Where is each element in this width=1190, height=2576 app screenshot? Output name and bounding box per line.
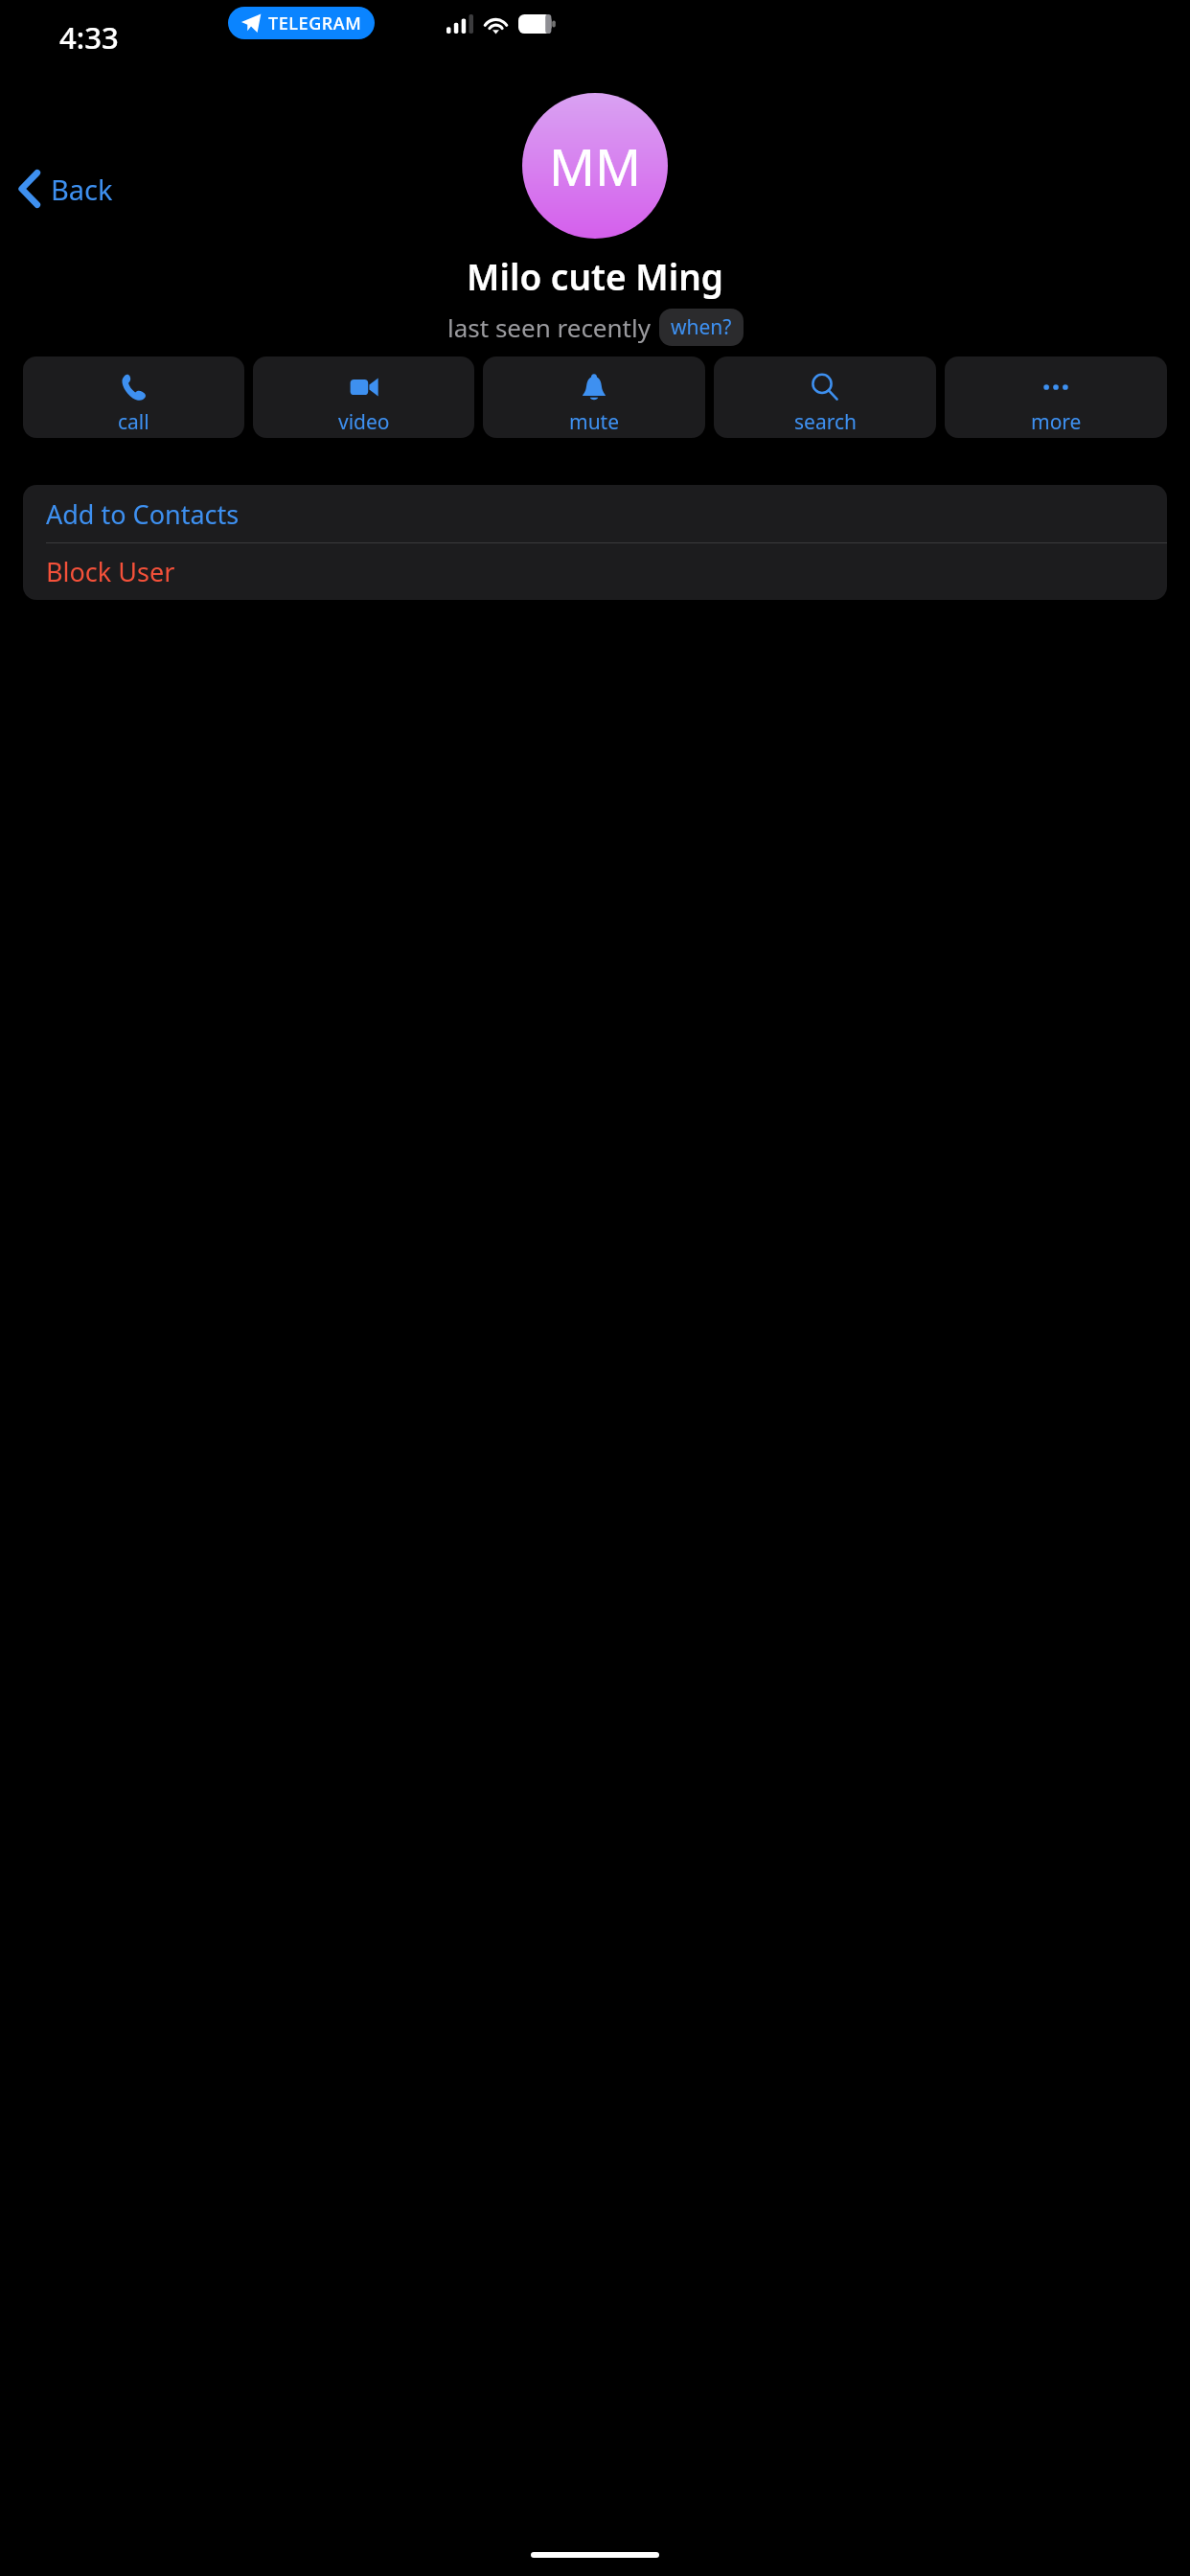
button[interactable]: video <box>253 356 474 438</box>
staticText: TELEGRAM <box>268 11 362 35</box>
staticText: when? <box>671 313 732 341</box>
staticText: Back <box>51 171 113 208</box>
button[interactable]: when? <box>659 309 744 346</box>
staticText: mute <box>569 408 620 436</box>
button[interactable]: Block User <box>23 543 1167 600</box>
staticText: MM <box>549 131 642 200</box>
button[interactable]: Back <box>13 161 117 217</box>
staticText: Add to Contacts <box>46 496 240 532</box>
button[interactable]: Profile photo <box>522 93 668 239</box>
staticText: Block User <box>46 554 175 589</box>
staticText: 4:33 <box>59 17 119 57</box>
button[interactable]: more <box>945 356 1167 438</box>
button[interactable]: call <box>23 356 244 438</box>
button[interactable]: Add to Contacts <box>23 485 1167 542</box>
staticText: video <box>338 408 390 436</box>
staticText: last seen recently <box>447 310 651 344</box>
staticText: search <box>794 408 857 436</box>
staticText: more <box>1031 408 1082 436</box>
staticText: Milo cute Ming <box>467 252 723 300</box>
button[interactable]: mute <box>483 356 705 438</box>
button[interactable]: search <box>714 356 936 438</box>
staticText: call <box>118 408 149 436</box>
